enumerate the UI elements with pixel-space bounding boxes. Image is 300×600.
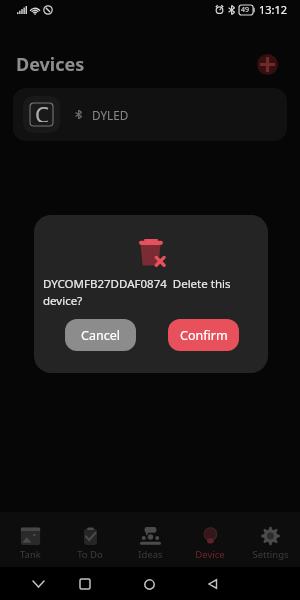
- button[interactable]: Device: [180, 518, 240, 561]
- staticText: 49: [241, 5, 250, 15]
- button[interactable]: Hide keyboard: [31, 577, 45, 591]
- button[interactable]: C: [13, 88, 287, 141]
- button[interactable]: To Do: [60, 518, 120, 561]
- staticText: Devices: [16, 52, 85, 77]
- button[interactable]: Settings: [240, 518, 300, 561]
- button[interactable]: Tank: [0, 518, 60, 561]
- staticText: Tank: [20, 548, 41, 561]
- staticText: DYCOMFB27DDAF0874 Delete this device?: [43, 276, 260, 308]
- staticText: 13:12: [259, 2, 288, 17]
- staticText: Cancel: [81, 327, 120, 344]
- button[interactable]: Recents: [78, 577, 92, 591]
- button[interactable]: Confirm: [168, 319, 239, 351]
- staticText: Confirm: [180, 327, 228, 344]
- staticText: C: [35, 99, 49, 122]
- staticText: Device: [195, 548, 225, 561]
- button[interactable]: Cancel: [65, 319, 136, 351]
- button[interactable]: Ideas: [120, 518, 180, 561]
- button[interactable]: Add device: [257, 54, 278, 75]
- staticText: DYLED: [92, 107, 129, 123]
- staticText: To Do: [77, 548, 103, 561]
- button[interactable]: Home: [142, 577, 156, 591]
- staticText: Settings: [252, 548, 289, 561]
- staticText: Ideas: [138, 548, 163, 561]
- button[interactable]: Back: [206, 577, 220, 591]
